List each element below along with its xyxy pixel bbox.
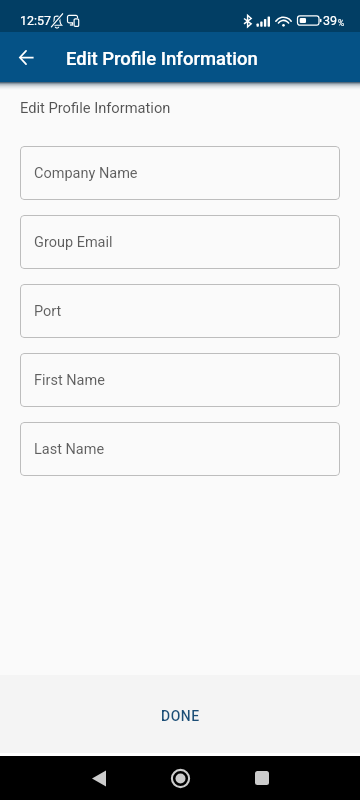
staticText: Company Name	[34, 165, 138, 182]
button[interactable]: Back	[6, 37, 46, 77]
button[interactable]: DONE	[0, 675, 360, 753]
staticText: Last Name	[34, 441, 105, 458]
button[interactable]: First Name	[20, 353, 340, 407]
button[interactable]: Home	[158, 756, 203, 800]
button[interactable]: Port	[20, 284, 340, 338]
staticText: First Name	[34, 372, 105, 389]
staticText: 12:57	[20, 13, 52, 28]
button[interactable]: Recents	[239, 756, 284, 800]
staticText: Port	[34, 303, 62, 320]
staticText: Edit Profile Information	[66, 48, 258, 70]
button[interactable]: Company Name	[20, 146, 340, 200]
staticText: 39	[323, 13, 338, 28]
staticText: Edit Profile Information	[20, 99, 171, 116]
staticText: %	[338, 18, 345, 28]
button[interactable]: Group Email	[20, 215, 340, 269]
staticText: Group Email	[34, 234, 113, 251]
staticText: DONE	[161, 708, 200, 724]
button[interactable]: Last Name	[20, 422, 340, 476]
button[interactable]: Back	[76, 756, 121, 800]
